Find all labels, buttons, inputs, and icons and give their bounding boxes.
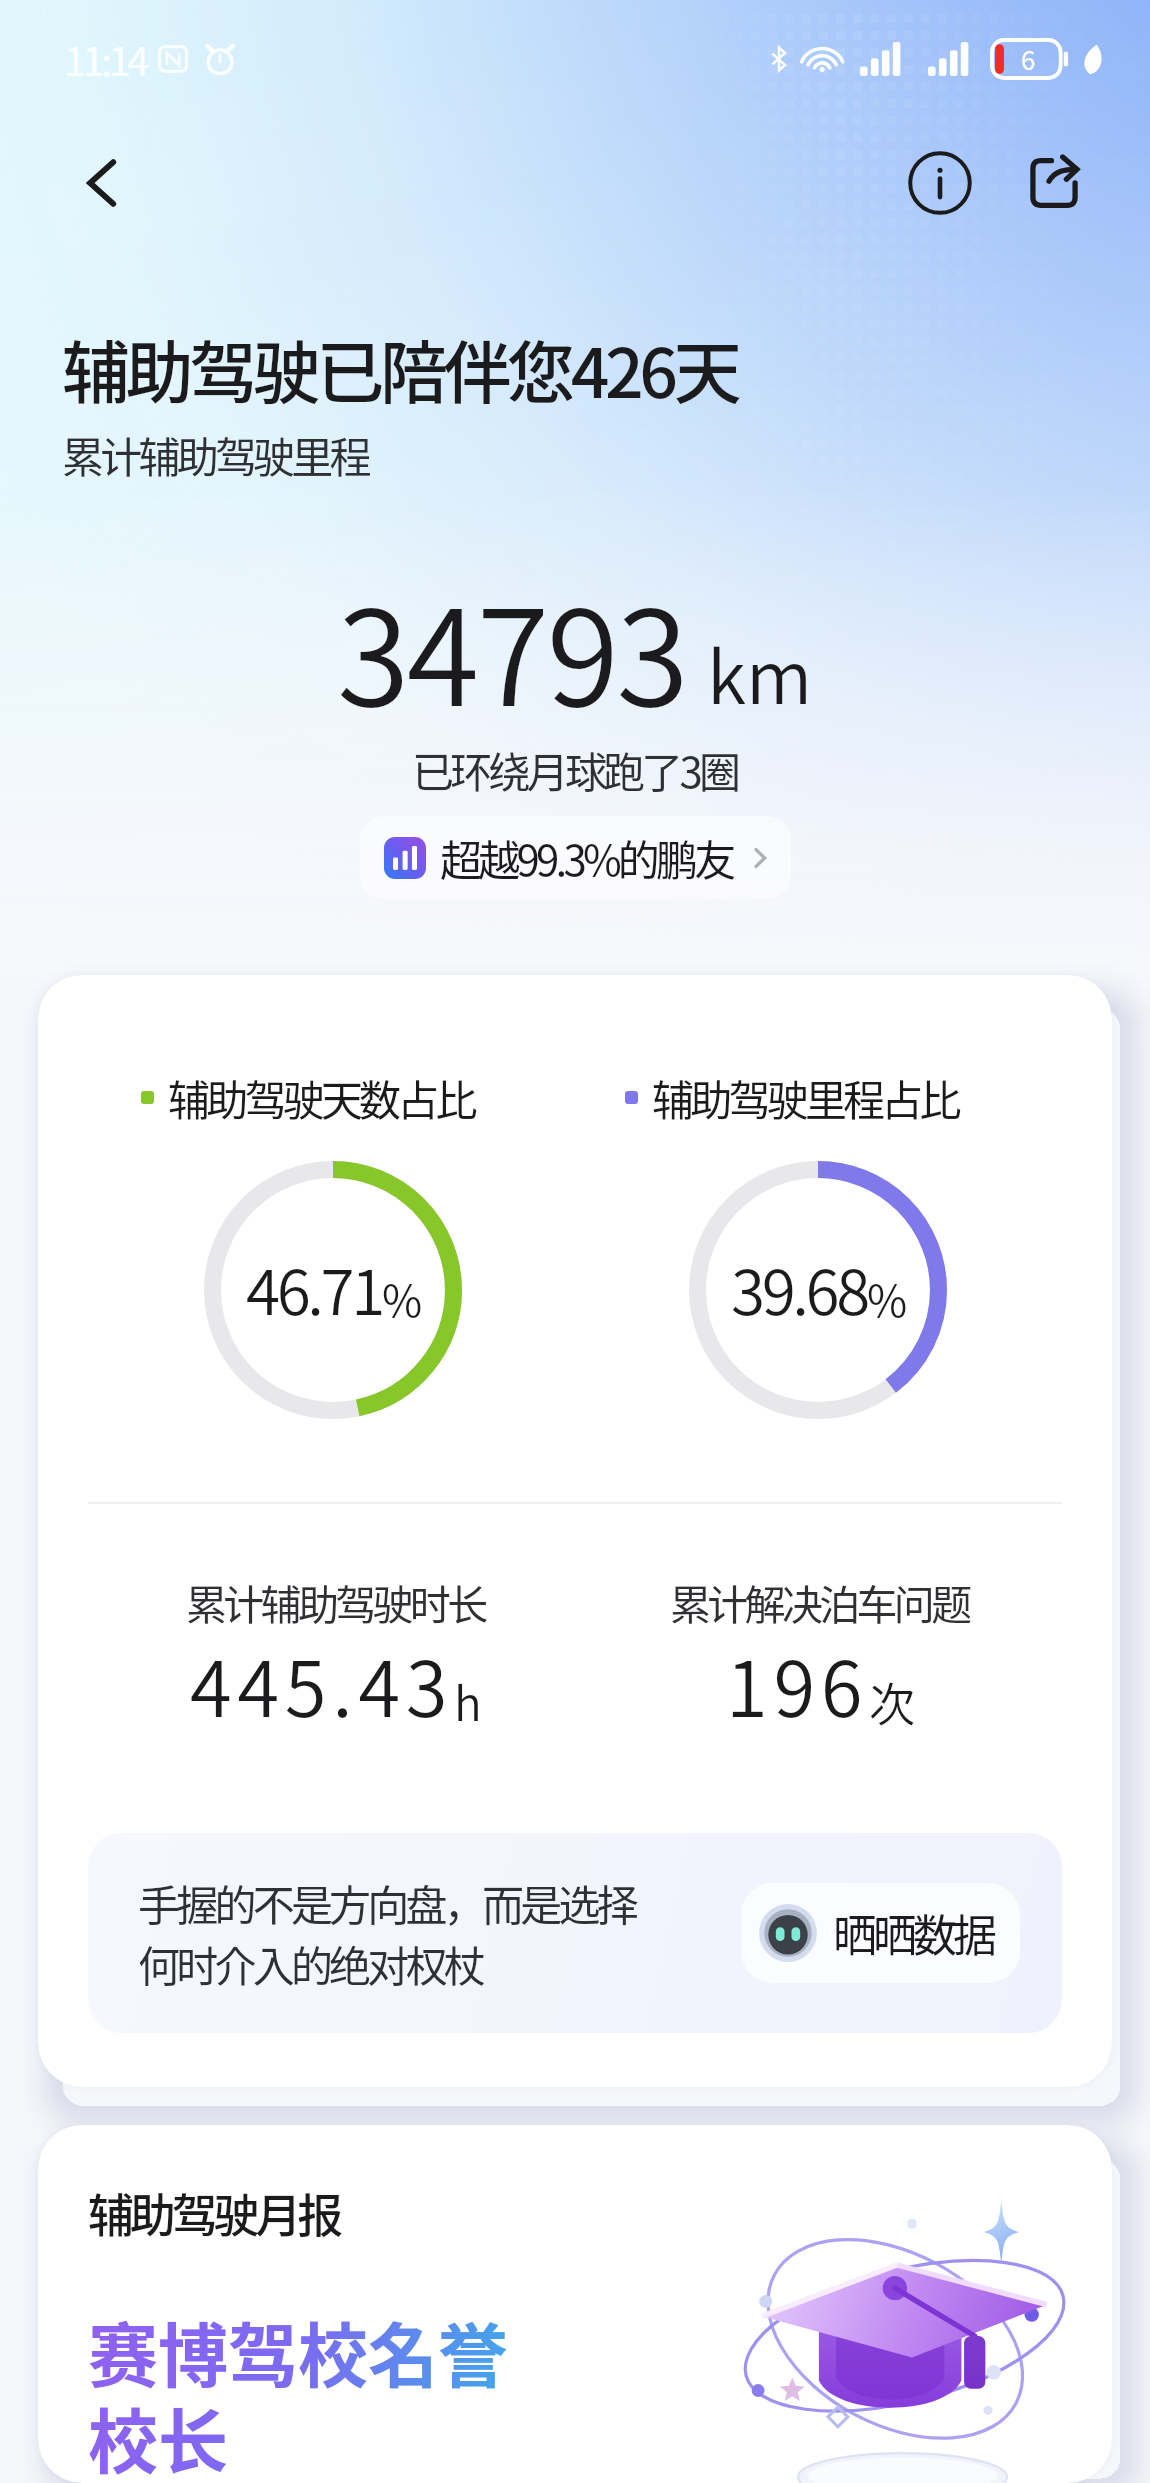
staticText: 超越99.3%的鹏友 [440,827,733,888]
staticText: 累计解决泊车问题 [670,1572,969,1631]
staticText: 辅助驾驶天数占比 [168,1067,474,1128]
button[interactable]: Share [1008,137,1100,229]
staticText: km [707,620,813,724]
button[interactable]: Info [894,137,986,229]
staticText: 辅助驾驶已陪伴您426天 [62,319,738,417]
staticText: 赛博驾校名誉 校长 [88,2301,508,2483]
staticText: 何时介入的绝对权杖 [138,1933,482,1994]
staticText: 6 [1021,40,1036,78]
button[interactable]: Back [56,135,152,231]
staticText: % [867,1266,906,1330]
staticText: 34793 [337,553,687,744]
staticText: 46.71 [246,1243,382,1333]
staticText: h [454,1668,482,1735]
staticText: 次 [869,1668,915,1735]
staticText: % [382,1266,421,1330]
staticText: 辅助驾驶里程占比 [652,1067,958,1128]
staticText: 手握的不是方向盘，而是选择 [138,1872,635,1933]
staticText: 39.68 [731,1243,867,1333]
staticText: 晒晒数据 [833,1901,994,1965]
staticText: 累计辅助驾驶里程 [62,424,368,485]
staticText: 累计辅助驾驶时长 [186,1572,485,1631]
staticText: 辅助驾驶月报 [88,2179,340,2246]
button[interactable]: 超越99.3%的鹏友 [360,816,791,899]
staticText: 已环绕月球跑了3圈 [412,739,738,800]
staticText: 11:14 [64,30,146,88]
staticText: 445.43 [190,1629,454,1739]
button[interactable]: 晒晒数据 [741,1883,1020,1983]
staticText: 196 [726,1629,869,1739]
